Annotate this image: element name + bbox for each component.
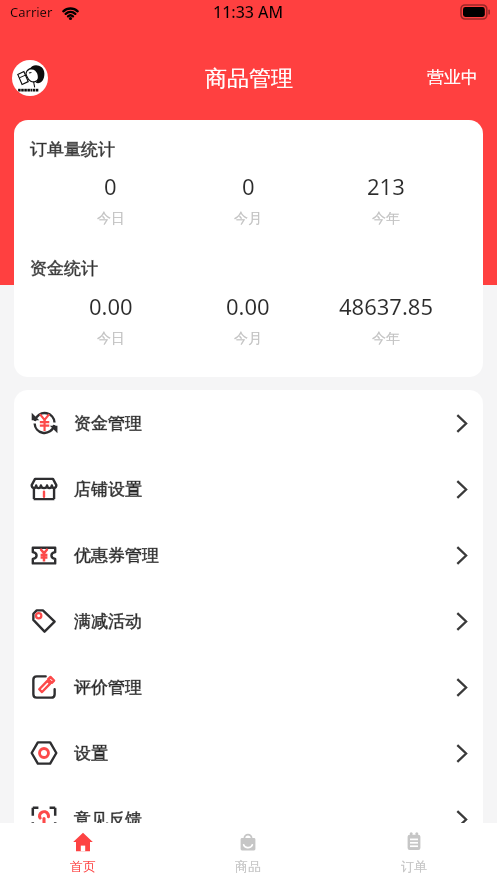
staticText: 今日 xyxy=(97,330,125,348)
staticText: 0.00 xyxy=(89,291,133,321)
staticText: 订单量统计 xyxy=(30,139,115,160)
button[interactable]: 订单 xyxy=(331,823,497,883)
staticText: 意见反馈 xyxy=(74,809,142,823)
staticText: 资金管理 xyxy=(74,413,142,434)
staticText: 首页 xyxy=(70,858,96,874)
button[interactable]: 满减活动 xyxy=(14,588,483,654)
staticText: 213 xyxy=(367,171,405,201)
staticText: 资金统计 xyxy=(30,258,98,279)
staticText: 商品 xyxy=(235,858,261,874)
staticText: 今月 xyxy=(234,210,262,228)
button[interactable]: 商品 xyxy=(165,823,331,883)
button[interactable]: 营业中 xyxy=(411,57,497,98)
staticText: 店铺设置 xyxy=(74,479,142,500)
button[interactable]: 资金管理 xyxy=(14,390,483,456)
staticText: 0 xyxy=(242,171,255,201)
staticText: 0.00 xyxy=(226,291,270,321)
staticText: 48637.85 xyxy=(339,291,433,321)
staticText: 店铺设置 xyxy=(74,479,142,500)
staticText: 今年 xyxy=(372,330,400,348)
staticText: 营业中 xyxy=(427,67,478,88)
staticText: 今年 xyxy=(372,210,400,228)
staticText: 订单量统计 xyxy=(30,139,115,160)
button[interactable]: 意见反馈 xyxy=(14,786,483,823)
button[interactable]: 设置 xyxy=(14,720,483,786)
staticText: 0 xyxy=(104,171,117,201)
button[interactable]: Shop logo xyxy=(12,60,48,96)
staticText: 优惠券管理 xyxy=(74,545,159,566)
button[interactable]: 店铺设置 xyxy=(14,456,483,522)
staticText: 评价管理 xyxy=(74,677,142,698)
staticText: 今月 xyxy=(234,330,262,348)
staticText: 今日 xyxy=(97,210,125,228)
staticText: 订单 xyxy=(401,858,427,874)
staticText: 商品管理 xyxy=(205,65,293,93)
staticText: 11:33 AM xyxy=(213,1,284,23)
staticText: 资金管理 xyxy=(74,413,142,434)
staticText: 优惠券管理 xyxy=(74,545,159,566)
button[interactable]: 优惠券管理 xyxy=(14,522,483,588)
staticText: 设置 xyxy=(74,743,108,764)
staticText: 评价管理 xyxy=(74,677,142,698)
staticText: 资金统计 xyxy=(30,258,98,279)
button[interactable]: 首页 xyxy=(0,823,165,883)
staticText: Carrier xyxy=(10,3,53,21)
button[interactable]: 评价管理 xyxy=(14,654,483,720)
staticText: 满减活动 xyxy=(74,611,142,632)
staticText: 设置 xyxy=(74,743,108,764)
staticText: 意见反馈 xyxy=(74,809,142,823)
staticText: 满减活动 xyxy=(74,611,142,632)
